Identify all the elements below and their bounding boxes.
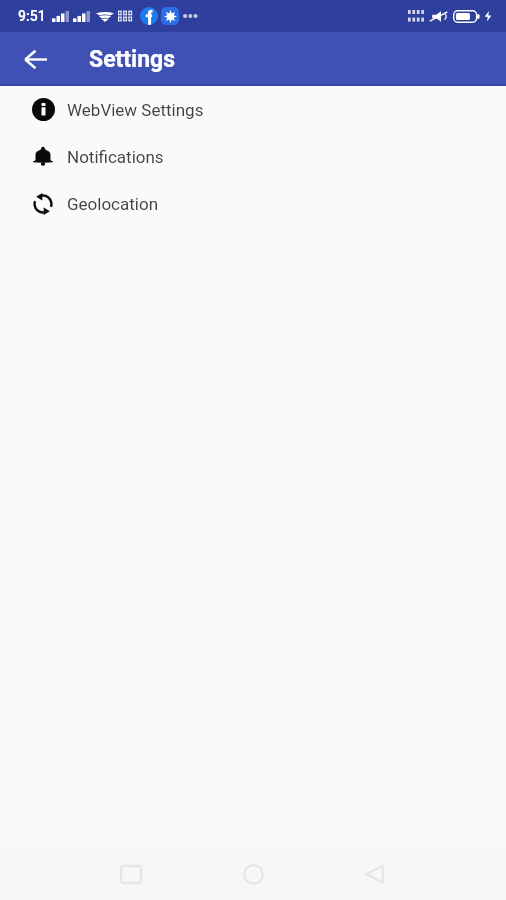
button[interactable]: Geolocation bbox=[0, 180, 506, 227]
staticText: Notifications bbox=[67, 147, 164, 167]
staticText: 9:51 bbox=[18, 8, 46, 24]
button[interactable]: Back bbox=[344, 848, 404, 900]
button[interactable]: Notifications bbox=[0, 133, 506, 180]
button[interactable]: Recent apps bbox=[101, 848, 161, 900]
button[interactable]: Home bbox=[223, 848, 283, 900]
button[interactable]: WebView Settings bbox=[0, 86, 506, 133]
button[interactable]: Navigate back bbox=[8, 32, 62, 86]
staticText: Settings bbox=[89, 46, 176, 73]
staticText: WebView Settings bbox=[67, 100, 204, 120]
staticText: Geolocation bbox=[67, 194, 159, 214]
